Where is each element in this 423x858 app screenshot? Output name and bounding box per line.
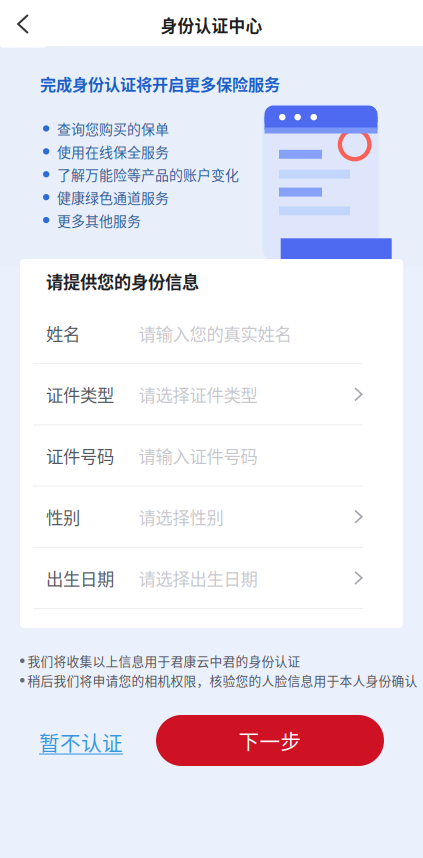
staticText: 性别 (46, 504, 80, 529)
staticText: 更多其他服务 (57, 210, 141, 230)
button[interactable]: 性别 (20, 487, 403, 548)
staticText: 请选择证件类型 (138, 382, 257, 407)
staticText: 稍后我们将申请您的相机权限，核验您的人脸信息用于本人身份确认 (28, 671, 418, 689)
staticText: 请输入您的真实姓名 (138, 321, 291, 346)
button[interactable]: 姓名 (20, 303, 403, 364)
staticText: 下一步 (238, 726, 301, 755)
staticText: 暂不认证 (39, 727, 123, 757)
staticText: 请选择出生日期 (138, 565, 257, 590)
button[interactable]: 返回 (1, 0, 45, 47)
staticText: 姓名 (46, 321, 80, 346)
staticText: 请选择性别 (138, 504, 223, 529)
button[interactable]: 暂不认证 (39, 722, 139, 762)
staticText: 查询您购买的保单 (57, 118, 169, 139)
button[interactable]: 出生日期 (20, 548, 403, 609)
staticText: 我们将收集以上信息用于君康云中君的身份认证 (28, 651, 301, 670)
button[interactable]: 证件类型 (20, 364, 403, 425)
staticText: 了解万能险等产品的账户变化 (57, 164, 239, 184)
staticText: 证件类型 (46, 382, 114, 407)
staticText: 健康绿色通道服务 (57, 187, 169, 207)
staticText: 身份认证中心 (160, 13, 262, 37)
staticText: 请输入证件号码 (138, 443, 257, 468)
staticText: 完成身份认证将开启更多保险服务 (40, 72, 280, 95)
button[interactable]: 下一步 (156, 715, 384, 766)
staticText: 使用在线保全服务 (57, 141, 169, 161)
staticText: 出生日期 (46, 565, 114, 590)
button[interactable]: 证件号码 (20, 425, 403, 487)
staticText: 请提供您的身份信息 (46, 268, 199, 293)
staticText: 证件号码 (46, 443, 114, 468)
